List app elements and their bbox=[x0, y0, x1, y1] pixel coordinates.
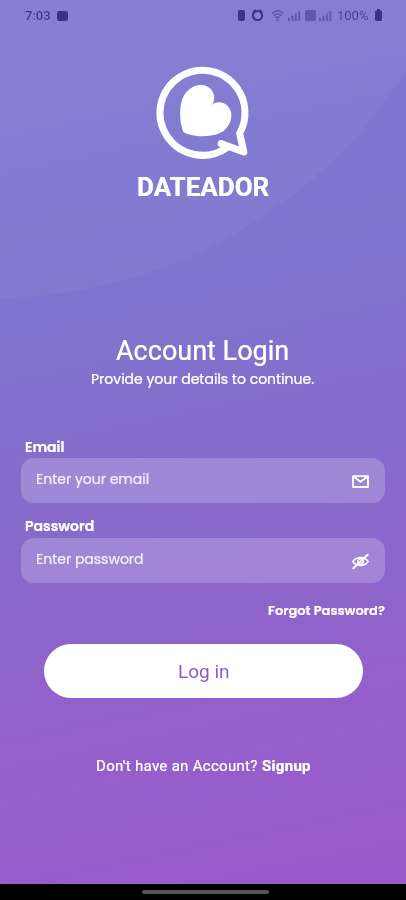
staticText: Enter your email bbox=[36, 469, 150, 489]
staticText: Password bbox=[25, 516, 95, 536]
button[interactable]: Forgot Password? bbox=[266, 599, 387, 621]
button[interactable]: Enter password bbox=[21, 538, 385, 583]
staticText: Forgot Password? bbox=[268, 601, 385, 619]
other: Show password bbox=[348, 549, 372, 573]
staticText: Account Login bbox=[116, 335, 290, 367]
staticText: DATEADOR bbox=[137, 172, 270, 202]
button[interactable]: Enter your email bbox=[21, 458, 385, 503]
staticText: Enter password bbox=[36, 549, 144, 569]
button[interactable]: Log in bbox=[44, 644, 363, 698]
staticText: Log in bbox=[178, 660, 230, 682]
button[interactable]: Signup bbox=[262, 757, 311, 775]
staticText: Provide your details to continue. bbox=[91, 369, 315, 389]
staticText: 7:03 bbox=[25, 8, 51, 23]
staticText: Signup bbox=[262, 757, 311, 775]
other: Email bbox=[348, 469, 372, 493]
staticText: Don't have an Account? bbox=[96, 757, 262, 775]
staticText: Email bbox=[25, 437, 65, 457]
staticText: 100% bbox=[337, 8, 369, 23]
